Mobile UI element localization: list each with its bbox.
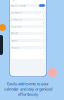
staticText: Alert [11,32,18,35]
button[interactable]: Starts [11,39,45,46]
staticText: Notes [11,46,19,49]
staticText: calendar and stay organised [4,86,52,92]
staticText: Invitees [11,18,22,21]
staticText: Easily add events to your [7,81,49,86]
staticText: Starts [11,39,17,42]
button[interactable]: Location [11,11,45,18]
staticText: Location [11,11,22,14]
button[interactable]: Notes [11,46,45,59]
button[interactable]: Repeat [11,25,45,32]
button[interactable]: Invitees [11,18,45,25]
staticText: ‹ [12,0,14,3]
button[interactable]: Event name [11,4,45,11]
button[interactable]: Back [11,0,15,1]
staticText: effortlessly [18,92,38,97]
button[interactable]: Alert [11,32,45,39]
staticText: Event name [11,4,26,7]
staticText: Repeat [11,25,21,28]
